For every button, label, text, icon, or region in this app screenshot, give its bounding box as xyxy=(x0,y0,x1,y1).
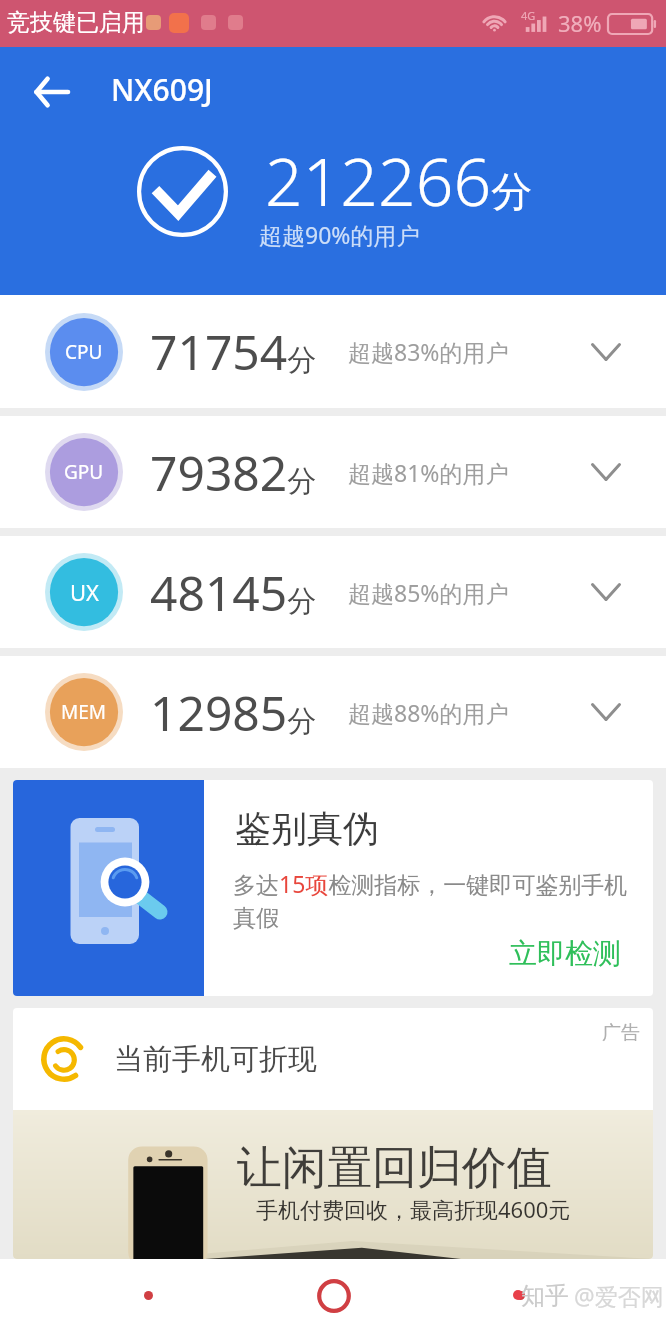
staticText: 超越88%的用户 xyxy=(348,697,509,728)
button[interactable]: UX xyxy=(0,536,666,648)
staticText: 48145分 xyxy=(150,560,317,625)
staticText: 广告 xyxy=(602,1021,640,1045)
staticText: CPU xyxy=(65,339,103,365)
staticText: 超越90%的用户 xyxy=(259,219,420,250)
staticText: 71754分 xyxy=(150,319,317,384)
staticText: 立即检测 xyxy=(509,936,621,971)
staticText: @爱否网 xyxy=(574,1280,664,1311)
staticText: 多达15项检测指标，一键即可鉴别手机真假 xyxy=(233,868,633,933)
staticText: 竞技键已启用 xyxy=(7,8,145,37)
staticText: 79382分 xyxy=(150,440,317,505)
button[interactable]: Back xyxy=(78,1259,218,1332)
staticText: 鉴别真伪 xyxy=(235,806,379,851)
button[interactable]: MEM xyxy=(0,656,666,768)
button[interactable]: Back xyxy=(7,47,97,137)
staticText: 超越85%的用户 xyxy=(348,577,509,608)
staticText: UX xyxy=(70,577,99,607)
staticText: 38% xyxy=(558,8,602,38)
button[interactable]: GPU xyxy=(0,416,666,528)
staticText: 知乎 xyxy=(521,1281,569,1311)
staticText: 212266分 xyxy=(265,135,533,225)
staticText: GPU xyxy=(64,459,104,485)
staticText: 让闲置回归价值 xyxy=(237,1140,552,1197)
staticText: 超越83%的用户 xyxy=(348,336,509,367)
button[interactable]: Recent apps xyxy=(450,1259,590,1332)
button[interactable]: 当前手机可折现 xyxy=(13,1008,653,1259)
button[interactable]: Home xyxy=(264,1259,404,1332)
button[interactable]: CPU xyxy=(0,295,666,408)
staticText: 12985分 xyxy=(150,680,317,745)
staticText: 4G xyxy=(521,8,536,23)
staticText: 超越81%的用户 xyxy=(348,457,509,488)
staticText: 手机付费回收，最高折现4600元 xyxy=(256,1194,571,1224)
button[interactable]: 鉴别真伪 xyxy=(13,780,653,996)
staticText: NX609J xyxy=(111,69,213,110)
staticText: 当前手机可折现 xyxy=(114,1041,317,1078)
staticText: MEM xyxy=(61,699,107,725)
